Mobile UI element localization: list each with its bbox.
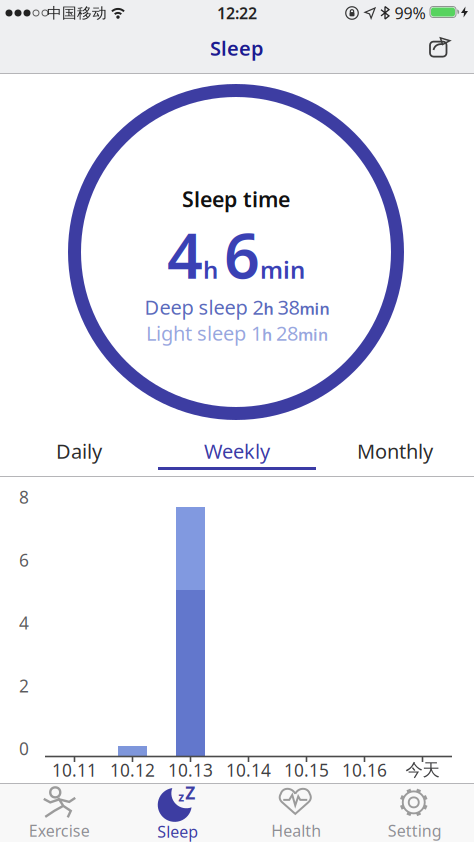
- staticText: 今天: [405, 759, 439, 781]
- staticText: Daily: [56, 438, 102, 464]
- staticText: Sleep: [157, 821, 198, 842]
- button[interactable]: Setting: [355, 784, 474, 841]
- button[interactable]: z: [118, 784, 237, 841]
- staticText: Sleep: [210, 35, 264, 61]
- staticText: Weekly: [204, 438, 270, 464]
- button[interactable]: Exercise: [0, 784, 118, 841]
- staticText: 中国移动: [47, 4, 107, 22]
- staticText: Health: [271, 820, 321, 841]
- staticText: 99%: [394, 2, 425, 24]
- staticText: 4h 6min: [167, 213, 305, 296]
- staticText: Deep sleep 2h 38min: [144, 294, 329, 320]
- staticText: z: [178, 789, 184, 805]
- staticText: 0: [19, 737, 29, 760]
- staticText: Exercise: [29, 820, 90, 841]
- button[interactable]: Share: [418, 27, 462, 67]
- staticText: 10.13: [168, 758, 213, 781]
- staticText: 2: [19, 674, 29, 697]
- staticText: 10.16: [342, 758, 387, 781]
- staticText: Monthly: [357, 438, 433, 464]
- button[interactable]: Health: [237, 784, 355, 841]
- button[interactable]: Daily: [0, 431, 158, 471]
- staticText: 10.14: [226, 758, 271, 781]
- staticText: 12:22: [217, 2, 257, 24]
- staticText: 6: [19, 548, 29, 571]
- staticText: 10.12: [110, 758, 155, 781]
- staticText: Z: [185, 781, 195, 804]
- staticText: Sleep time: [182, 185, 290, 213]
- staticText: Light sleep 1h 28min: [146, 320, 328, 346]
- staticText: 8: [19, 485, 29, 508]
- staticText: Setting: [388, 820, 442, 841]
- staticText: 4: [19, 611, 29, 634]
- button[interactable]: Weekly: [158, 431, 316, 471]
- staticText: 10.15: [284, 758, 329, 781]
- button[interactable]: Monthly: [316, 431, 474, 471]
- staticText: 10.11: [52, 758, 97, 781]
